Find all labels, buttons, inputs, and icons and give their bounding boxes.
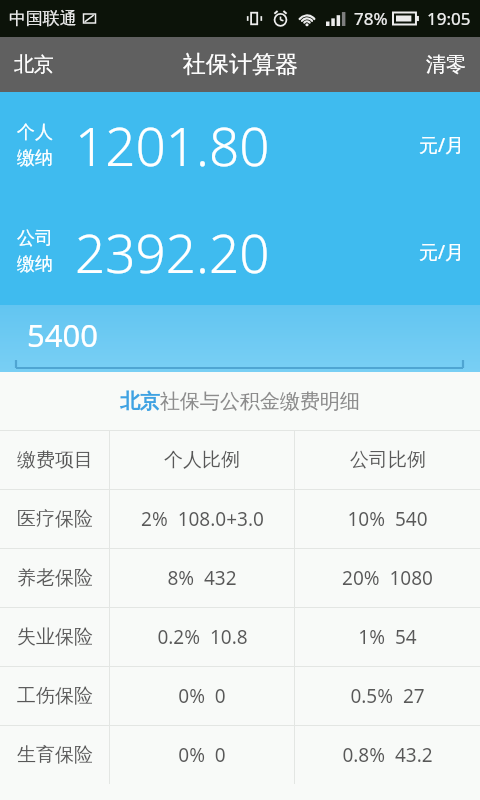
staticText: 8% 432	[167, 565, 237, 591]
staticText: 缴纳	[17, 253, 53, 276]
staticText: 公司比例	[350, 448, 426, 472]
staticText: 缴纳	[17, 147, 53, 170]
staticText: 0% 0	[178, 683, 226, 709]
button[interactable]: 缴费项目	[0, 431, 480, 489]
button[interactable]: 生育保险	[0, 726, 480, 784]
staticText: 中国联通	[9, 8, 77, 29]
staticText: 10% 540	[347, 506, 428, 532]
staticText: 北京	[14, 52, 54, 77]
staticText: 元/月	[419, 239, 465, 265]
staticText: 工伤保险	[17, 684, 93, 708]
staticText: 2392.20	[75, 216, 270, 288]
staticText: 78%	[354, 7, 388, 30]
staticText: 0% 0	[178, 742, 226, 768]
staticText: 1% 54	[358, 624, 417, 650]
button[interactable]: 医疗保险	[0, 490, 480, 548]
staticText: 北京社保与公积金缴费明细	[120, 389, 360, 414]
staticText: 失业保险	[17, 625, 93, 649]
button[interactable]: 清零	[412, 37, 480, 92]
staticText: 生育保险	[17, 743, 93, 767]
staticText: 0.5% 27	[350, 683, 425, 709]
staticText: 个人	[17, 121, 53, 144]
button[interactable]: 工伤保险	[0, 667, 480, 725]
staticText: 缴费项目	[17, 448, 93, 472]
staticText: 1201.80	[75, 109, 270, 181]
staticText: 养老保险	[17, 566, 93, 590]
staticText: 5400	[27, 314, 98, 356]
staticText: 清零	[426, 52, 466, 77]
staticText: 个人比例	[164, 448, 240, 472]
staticText: 20% 1080	[342, 565, 433, 591]
button[interactable]: 养老保险	[0, 549, 480, 607]
staticText: 0.8% 43.2	[342, 742, 433, 768]
button[interactable]: Salary input 5400	[0, 305, 480, 372]
staticText: 公司	[17, 227, 53, 250]
staticText: 元/月	[419, 132, 465, 158]
staticText: 19:05	[427, 7, 471, 30]
staticText: 医疗保险	[17, 507, 93, 531]
button[interactable]: 失业保险	[0, 608, 480, 666]
button[interactable]: 北京	[0, 37, 68, 92]
staticText: 0.2% 10.8	[157, 624, 248, 650]
staticText: 2% 108.0+3.0	[141, 506, 264, 532]
staticText: 社保计算器	[183, 50, 298, 79]
